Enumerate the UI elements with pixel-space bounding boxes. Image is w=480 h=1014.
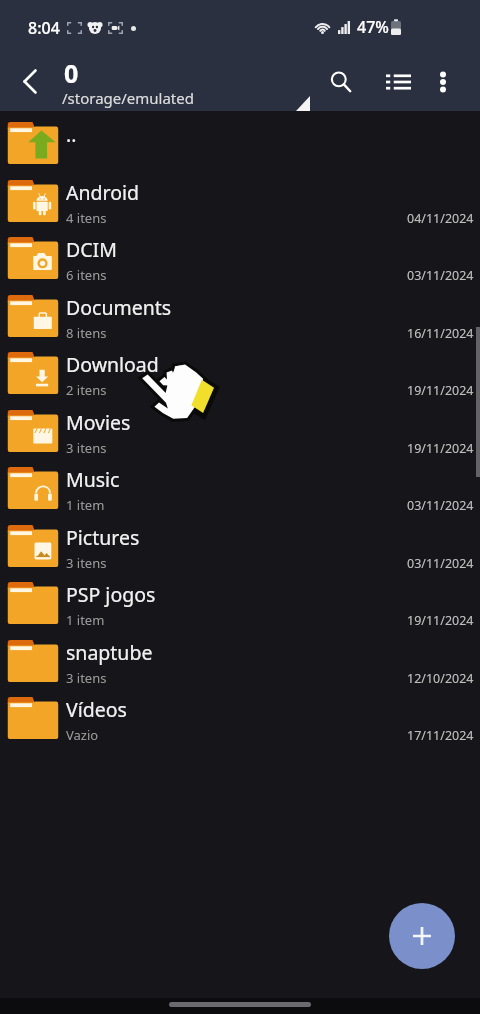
staticText: 19/11/2024 bbox=[407, 440, 474, 457]
staticText: PSP jogos bbox=[66, 581, 156, 608]
staticText: 0 bbox=[64, 56, 79, 90]
button[interactable]: Pictures bbox=[0, 517, 480, 575]
staticText: .. bbox=[66, 121, 77, 148]
staticText: 8 itens bbox=[66, 324, 107, 342]
staticText: 16/11/2024 bbox=[407, 325, 474, 342]
staticText: 6 itens bbox=[66, 266, 107, 284]
staticText: 3 itens bbox=[66, 439, 107, 457]
button[interactable]: Documents bbox=[0, 287, 480, 345]
button[interactable]: More options bbox=[420, 59, 466, 105]
staticText: Music bbox=[66, 466, 120, 493]
staticText: Android bbox=[66, 179, 139, 206]
staticText: Documents bbox=[66, 294, 172, 321]
staticText: Movies bbox=[66, 409, 131, 436]
staticText: Download bbox=[66, 351, 159, 378]
staticText: 3 itens bbox=[66, 669, 107, 687]
staticText: 1 item bbox=[66, 611, 105, 629]
staticText: snaptube bbox=[66, 639, 153, 666]
staticText: Vídeos bbox=[66, 696, 127, 723]
staticText: Pictures bbox=[66, 524, 140, 551]
button[interactable]: Music bbox=[0, 459, 480, 517]
staticText: DCIM bbox=[66, 236, 117, 263]
staticText: 03/11/2024 bbox=[407, 267, 474, 284]
staticText: Vazio bbox=[66, 726, 99, 744]
button[interactable]: Movies bbox=[0, 402, 480, 460]
staticText: 1 item bbox=[66, 496, 105, 514]
staticText: 3 itens bbox=[66, 554, 107, 572]
button[interactable]: Download bbox=[0, 344, 480, 402]
button[interactable]: Add bbox=[389, 903, 455, 969]
button[interactable]: View mode bbox=[375, 59, 421, 105]
button[interactable]: Vídeos bbox=[0, 689, 480, 747]
staticText: 12/10/2024 bbox=[407, 670, 474, 687]
button[interactable]: DCIM bbox=[0, 229, 480, 287]
button[interactable]: Search bbox=[318, 59, 364, 105]
button[interactable]: PSP jogos bbox=[0, 574, 480, 632]
staticText: 4 itens bbox=[66, 209, 107, 227]
staticText: 03/11/2024 bbox=[407, 555, 474, 572]
staticText: 04/11/2024 bbox=[407, 210, 474, 227]
button[interactable]: Android bbox=[0, 172, 480, 230]
button[interactable]: snaptube bbox=[0, 632, 480, 690]
staticText: 2 itens bbox=[66, 381, 107, 399]
staticText: 03/11/2024 bbox=[407, 497, 474, 514]
staticText: 8:04 bbox=[28, 17, 60, 39]
staticText: /storage/emulated bbox=[62, 88, 194, 108]
button[interactable]: Back bbox=[8, 59, 52, 103]
staticText: 19/11/2024 bbox=[407, 382, 474, 399]
staticText: 19/11/2024 bbox=[407, 612, 474, 629]
staticText: 47% bbox=[357, 16, 389, 38]
staticText: 17/11/2024 bbox=[407, 727, 474, 744]
button[interactable]: .. bbox=[0, 114, 480, 172]
